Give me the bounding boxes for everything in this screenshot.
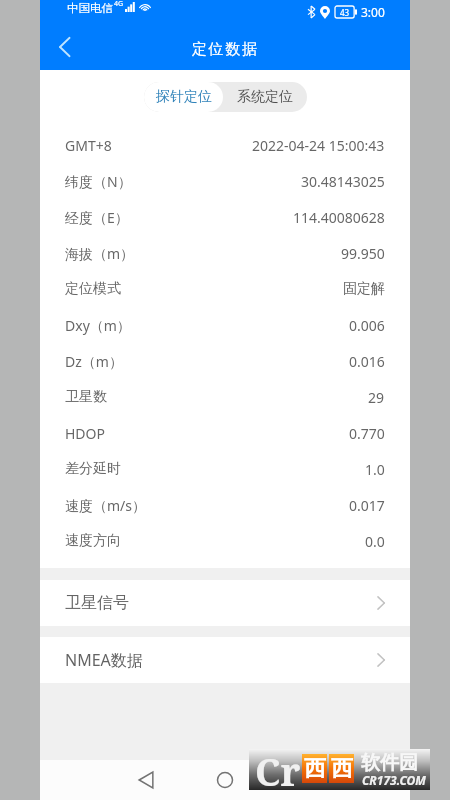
button[interactable]: Recents xyxy=(284,760,324,800)
staticText: 速度方向 xyxy=(65,532,121,550)
button[interactable]: Back xyxy=(42,25,86,69)
staticText: 纬度（N） xyxy=(65,172,132,191)
staticText: 3:00 xyxy=(361,4,385,20)
staticText: 经度（E） xyxy=(65,208,129,227)
staticText: 99.950 xyxy=(341,244,385,263)
staticText: CR173.COM xyxy=(362,772,426,788)
staticText: 海拔（m） xyxy=(65,244,135,263)
staticText: 0.016 xyxy=(349,352,385,371)
button[interactable]: Back xyxy=(126,760,166,800)
staticText: GMT+8 xyxy=(65,136,112,155)
staticText: 0.0 xyxy=(365,532,385,551)
staticText: 0.017 xyxy=(349,496,385,515)
staticText: 速度（m/s） xyxy=(65,496,147,515)
staticText: 43 xyxy=(340,7,350,18)
staticText: 西 xyxy=(304,755,326,783)
staticText: 定位模式 xyxy=(65,280,121,298)
staticText: 系统定位 xyxy=(237,88,293,106)
staticText: 定位数据 xyxy=(192,40,259,59)
staticText: 西 xyxy=(331,755,353,783)
staticText: Dxy（m） xyxy=(65,316,131,335)
button[interactable]: Home xyxy=(205,760,245,800)
staticText: 2022-04-24 15:00:43 xyxy=(252,136,385,155)
staticText: 0.006 xyxy=(349,316,385,335)
staticText: NMEA数据 xyxy=(65,649,143,671)
staticText: Cr xyxy=(255,745,301,786)
button[interactable]: 探针定位 xyxy=(144,82,223,112)
staticText: 0.770 xyxy=(349,424,385,443)
staticText: 差分延时 xyxy=(65,460,121,478)
button[interactable]: 系统定位 xyxy=(223,82,307,112)
staticText: HDOP xyxy=(65,424,105,443)
staticText: 114.40080628 xyxy=(293,208,385,227)
staticText: 卫星信号 xyxy=(65,593,129,613)
staticText: 29 xyxy=(368,388,385,407)
staticText: 1.0 xyxy=(365,460,385,479)
staticText: Dz（m） xyxy=(65,352,123,371)
staticText: 30.48143025 xyxy=(301,172,385,191)
button[interactable]: 卫星信号 xyxy=(40,580,410,626)
button[interactable]: NMEA数据 xyxy=(40,637,410,683)
staticText: 卫星数 xyxy=(65,388,107,406)
staticText: 中国电信 xyxy=(67,1,113,15)
staticText: 软件园 xyxy=(361,751,418,775)
staticText: 4G xyxy=(114,0,124,9)
staticText: 固定解 xyxy=(343,280,385,298)
staticText: 探针定位 xyxy=(156,88,212,106)
